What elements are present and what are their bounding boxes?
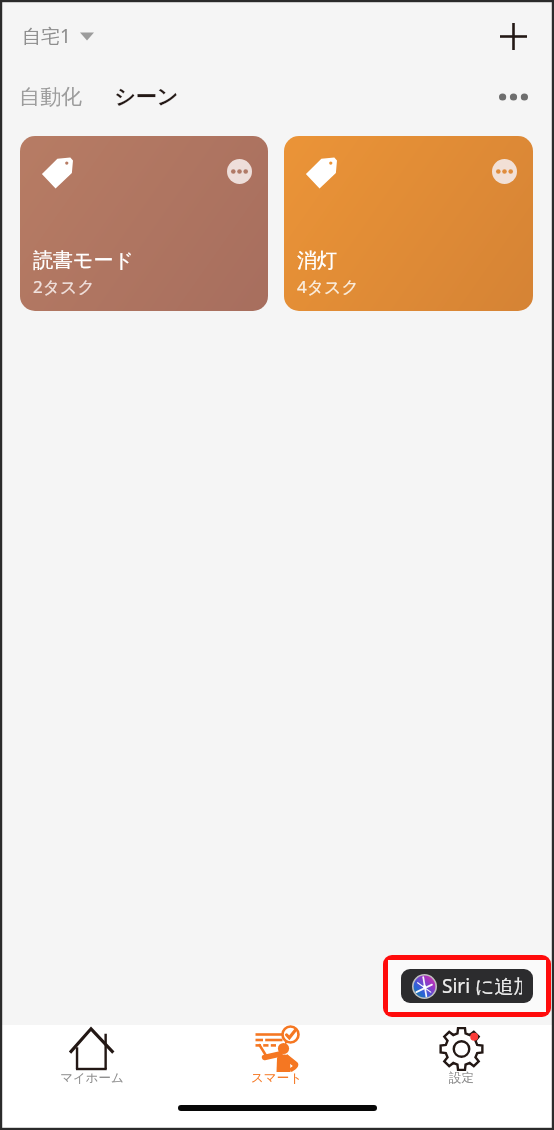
- button[interactable]: Scene options: [284, 136, 533, 311]
- button[interactable]: スマート: [184, 1025, 369, 1096]
- button[interactable]: シーン: [114, 76, 178, 118]
- staticText: スマート: [251, 1070, 302, 1086]
- button[interactable]: 設定: [369, 1025, 554, 1096]
- button[interactable]: マイホーム: [0, 1025, 184, 1096]
- staticText: 自動化: [19, 84, 82, 110]
- staticText: 自宅1: [22, 23, 71, 49]
- staticText: マイホーム: [60, 1070, 124, 1086]
- button[interactable]: More options: [489, 73, 537, 121]
- staticText: 設定: [449, 1070, 474, 1086]
- staticText: 読書モード: [33, 248, 134, 273]
- button[interactable]: Add: [489, 12, 537, 60]
- staticText: 4タスク: [297, 275, 359, 298]
- button[interactable]: Scene options: [492, 159, 517, 184]
- staticText: 消灯: [297, 248, 337, 273]
- staticText: シーン: [114, 84, 178, 110]
- button[interactable]: Scene options: [20, 136, 268, 311]
- button[interactable]: 自動化: [19, 76, 82, 118]
- button[interactable]: Siri に追加: [401, 969, 533, 1003]
- button[interactable]: Scene options: [227, 159, 252, 184]
- button[interactable]: 自宅1: [14, 17, 102, 55]
- staticText: 2タスク: [33, 275, 95, 298]
- staticText: Siri に追加: [442, 973, 522, 999]
